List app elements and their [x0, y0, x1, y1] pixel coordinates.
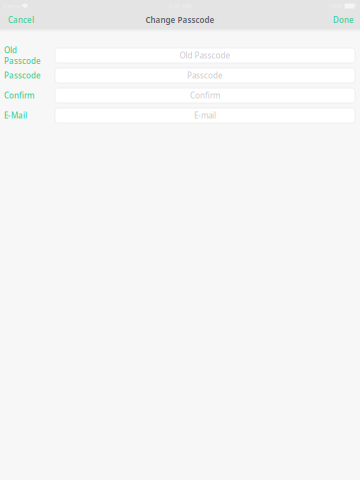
- button[interactable]: Done: [325, 11, 360, 28]
- staticText: Cancel: [8, 15, 34, 25]
- staticText: Done: [333, 15, 354, 25]
- staticText: Confirm: [190, 90, 220, 101]
- staticText: Change Passcode: [145, 15, 214, 25]
- button[interactable]: Passcode: [55, 68, 355, 83]
- staticText: Old Passcode: [4, 45, 41, 66]
- button[interactable]: Confirm: [55, 88, 355, 103]
- staticText: E-mail: [194, 110, 216, 121]
- staticText: E-Mail: [4, 110, 27, 121]
- button[interactable]: E-mail: [55, 108, 355, 123]
- button[interactable]: Cancel: [0, 11, 42, 28]
- staticText: Confirm: [4, 90, 35, 101]
- staticText: Old Passcode: [179, 50, 230, 61]
- button[interactable]: Old Passcode: [55, 48, 355, 63]
- staticText: Passcode: [4, 70, 41, 81]
- staticText: Passcode: [187, 70, 223, 81]
